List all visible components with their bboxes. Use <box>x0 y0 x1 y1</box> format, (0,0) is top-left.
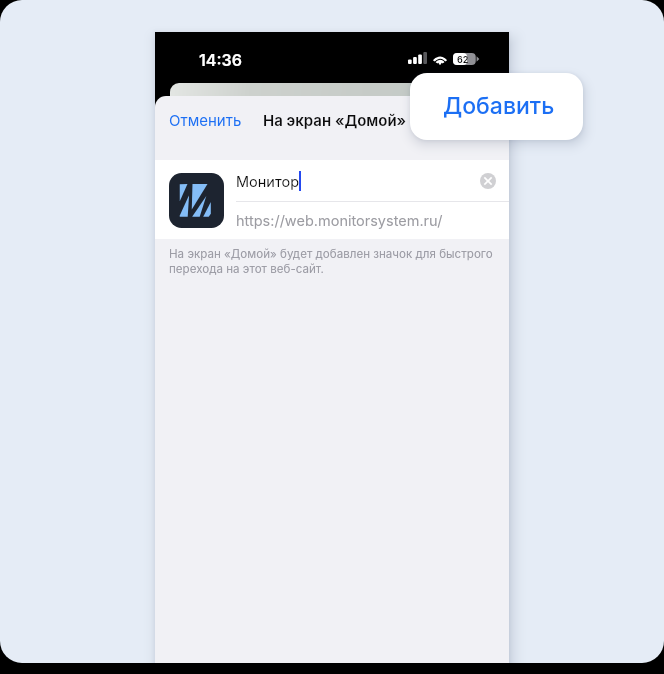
staticText: 14:36 <box>199 50 242 69</box>
staticText: На экран «Домой» <box>263 111 407 129</box>
button[interactable]: Добавить <box>410 73 583 140</box>
staticText: Монитор <box>236 173 300 191</box>
button[interactable]: Отменить <box>169 111 242 129</box>
staticText: На экран «Домой» будет добавлен значок д… <box>169 247 493 276</box>
staticText: Добавить <box>443 92 555 120</box>
staticText: 62 <box>457 54 469 65</box>
staticText: https://web.monitorsystem.ru/ <box>236 212 443 230</box>
button[interactable]: Очистить <box>480 173 496 189</box>
